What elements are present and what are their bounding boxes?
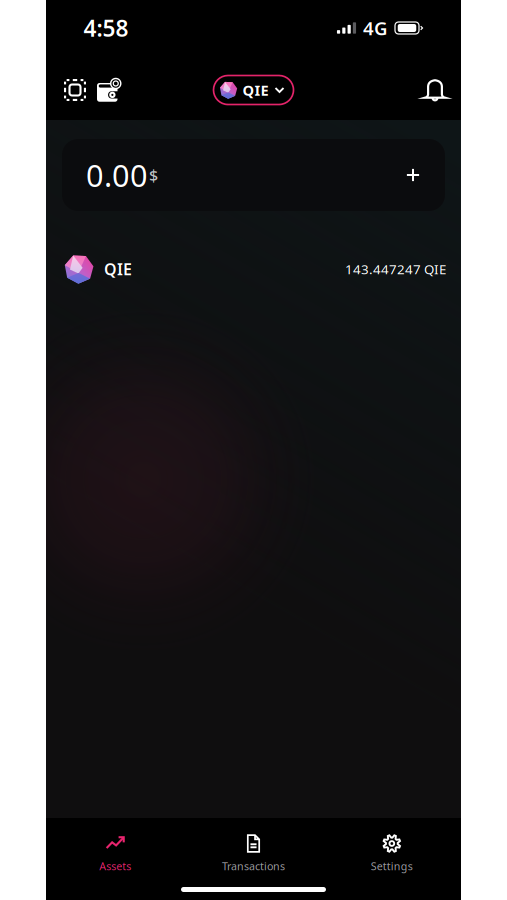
staticText: 143.447247 QIE bbox=[345, 260, 446, 278]
staticText: QIE bbox=[242, 80, 268, 100]
staticText: Settings bbox=[371, 859, 413, 873]
button[interactable]: Wallet bbox=[90, 68, 128, 112]
staticText: 4G bbox=[363, 16, 388, 40]
button[interactable]: Notifications bbox=[418, 68, 452, 112]
staticText: $ bbox=[149, 164, 158, 186]
button[interactable]: Assets bbox=[46, 818, 184, 884]
staticText: 0.00 bbox=[86, 155, 148, 195]
staticText: Assets bbox=[99, 859, 131, 873]
button[interactable]: QIE bbox=[213, 75, 293, 104]
button[interactable]: Add funds bbox=[399, 161, 427, 189]
staticText: Transactions bbox=[222, 859, 285, 873]
button[interactable]: Transactions bbox=[184, 818, 323, 884]
button[interactable]: Scan QR code bbox=[60, 68, 90, 112]
button[interactable]: QIE bbox=[46, 239, 461, 299]
staticText: QIE bbox=[104, 258, 132, 280]
staticText: 4:58 bbox=[83, 13, 128, 43]
button[interactable]: Settings bbox=[323, 818, 461, 884]
